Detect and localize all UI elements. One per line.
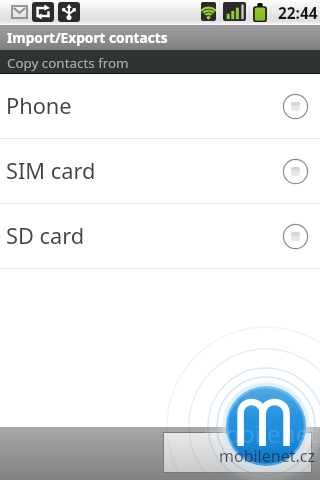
button[interactable]: SIM card [0, 139, 320, 204]
staticText: Import/Export contacts [7, 28, 168, 47]
button[interactable]: SD card [0, 204, 320, 269]
staticText: Phone [6, 91, 72, 121]
button[interactable] [164, 433, 311, 472]
staticText: Copy contacts from [7, 54, 129, 72]
staticText: 22:44 [278, 3, 318, 24]
button[interactable]: Phone [0, 74, 320, 139]
staticText: SIM card [6, 156, 96, 186]
other: USB connected [58, 2, 80, 22]
staticText: SD card [6, 221, 85, 251]
staticText: mobilenet.cz [219, 445, 315, 467]
staticText: mobilenet.cz [203, 417, 320, 450]
other: Sync [32, 2, 54, 22]
